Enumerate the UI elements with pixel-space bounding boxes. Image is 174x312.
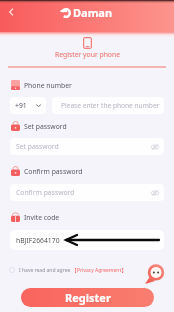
button[interactable]: hBJIF2664170 [10, 230, 164, 250]
staticText: Set password [16, 142, 59, 151]
button[interactable]: +91 [10, 97, 46, 114]
staticText: Invite code [24, 213, 60, 222]
button[interactable]: Please enter the phone number [52, 97, 164, 114]
staticText: I have read and agree [19, 267, 72, 274]
button[interactable]: Customer service [146, 263, 166, 283]
staticText: hBJIF2664170 [16, 236, 60, 245]
staticText: Please enter the phone number [61, 101, 160, 110]
button[interactable]: Confirm password [10, 184, 164, 201]
staticText: Phone number [24, 81, 72, 90]
button[interactable]: Show password [149, 187, 160, 198]
button[interactable]: Show password [149, 141, 160, 152]
button[interactable]: Set password [10, 138, 164, 155]
staticText: Register [65, 290, 111, 305]
staticText: 【Privacy Agreement】 [72, 267, 127, 274]
button[interactable]: Register [21, 288, 154, 307]
button[interactable]: Back [1, 0, 21, 24]
button[interactable]: I have read and agree [9, 264, 127, 276]
staticText: Confirm password [16, 188, 75, 197]
staticText: Set password [24, 122, 67, 131]
staticText: +91 [15, 101, 27, 110]
staticText: Daman [73, 5, 113, 20]
staticText: Confirm password [24, 167, 83, 176]
staticText: Register your phone [55, 50, 120, 59]
